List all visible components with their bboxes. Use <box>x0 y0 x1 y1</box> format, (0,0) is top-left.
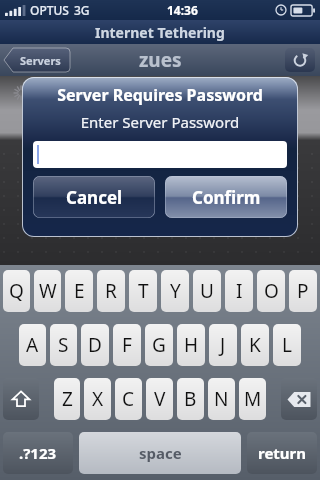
staticText: U <box>200 278 214 304</box>
staticText: B <box>184 386 197 412</box>
staticText: C <box>122 386 135 412</box>
staticText: O <box>264 278 279 304</box>
staticText: K <box>249 332 261 358</box>
button[interactable]: U <box>193 270 221 312</box>
button[interactable]: J <box>209 324 237 366</box>
staticText: return <box>258 443 307 463</box>
button[interactable]: K <box>241 324 269 366</box>
button[interactable]: P <box>289 270 317 312</box>
staticText: H <box>184 332 199 358</box>
staticText: J <box>220 332 226 358</box>
button[interactable]: C <box>115 378 142 420</box>
staticText: .?123 <box>19 443 57 463</box>
button[interactable]: X <box>84 378 111 420</box>
button[interactable]: Confirm <box>165 176 287 218</box>
staticText: D <box>88 332 102 358</box>
staticText: Server Requires Password <box>22 84 298 106</box>
staticText: 14:36 <box>167 2 198 18</box>
button[interactable]: .?123 <box>3 432 73 474</box>
button[interactable]: T <box>129 270 157 312</box>
staticText: OPTUS <box>30 2 69 18</box>
button[interactable]: O <box>257 270 285 312</box>
button[interactable]: Shift <box>3 378 39 420</box>
staticText: V <box>154 386 166 412</box>
staticText: A <box>26 332 39 358</box>
button[interactable]: R <box>97 270 125 312</box>
staticText: T <box>138 278 149 304</box>
button[interactable]: S <box>50 324 77 366</box>
button[interactable]: B <box>177 378 204 420</box>
button[interactable]: return <box>247 432 317 474</box>
staticText: F <box>122 332 132 358</box>
button[interactable]: W <box>34 270 61 312</box>
button[interactable]: N <box>208 378 235 420</box>
button[interactable] <box>33 141 287 168</box>
button[interactable]: space <box>79 432 241 474</box>
staticText: Z <box>62 386 73 412</box>
staticText: space <box>139 443 182 463</box>
button[interactable]: Backspace <box>281 378 317 420</box>
button[interactable]: E <box>65 270 93 312</box>
button[interactable]: G <box>145 324 173 366</box>
staticText: R <box>105 278 117 304</box>
button[interactable]: M <box>239 378 266 420</box>
staticText: Servers <box>20 53 61 68</box>
button[interactable]: D <box>81 324 109 366</box>
staticText: 3G <box>74 2 90 18</box>
staticText: N <box>214 386 229 412</box>
staticText: zues <box>139 47 182 73</box>
button[interactable]: L <box>273 324 301 366</box>
staticText: G <box>152 332 166 358</box>
staticText: Y <box>170 278 181 304</box>
staticText: Enter Server Password <box>22 112 298 132</box>
staticText: Internet Tethering <box>95 23 225 42</box>
button[interactable]: Servers <box>4 48 70 72</box>
button[interactable]: I <box>225 270 253 312</box>
staticText: Q <box>9 278 24 304</box>
button[interactable]: F <box>113 324 141 366</box>
button[interactable]: Refresh <box>285 48 315 72</box>
staticText: I <box>236 278 243 304</box>
staticText: Loading <box>34 84 99 107</box>
button[interactable]: Y <box>161 270 189 312</box>
button[interactable]: Z <box>54 378 80 420</box>
button[interactable]: Cancel <box>33 176 155 218</box>
button[interactable]: H <box>177 324 205 366</box>
staticText: Cancel <box>66 186 123 209</box>
staticText: S <box>58 332 69 358</box>
button[interactable]: Q <box>3 270 30 312</box>
staticText: X <box>92 386 104 412</box>
staticText: W <box>39 278 57 304</box>
staticText: Confirm <box>192 186 261 209</box>
button[interactable]: V <box>146 378 173 420</box>
staticText: E <box>74 278 85 304</box>
button[interactable]: A <box>19 324 46 366</box>
staticText: L <box>282 332 292 358</box>
staticText: P <box>297 278 309 304</box>
staticText: M <box>244 386 262 412</box>
